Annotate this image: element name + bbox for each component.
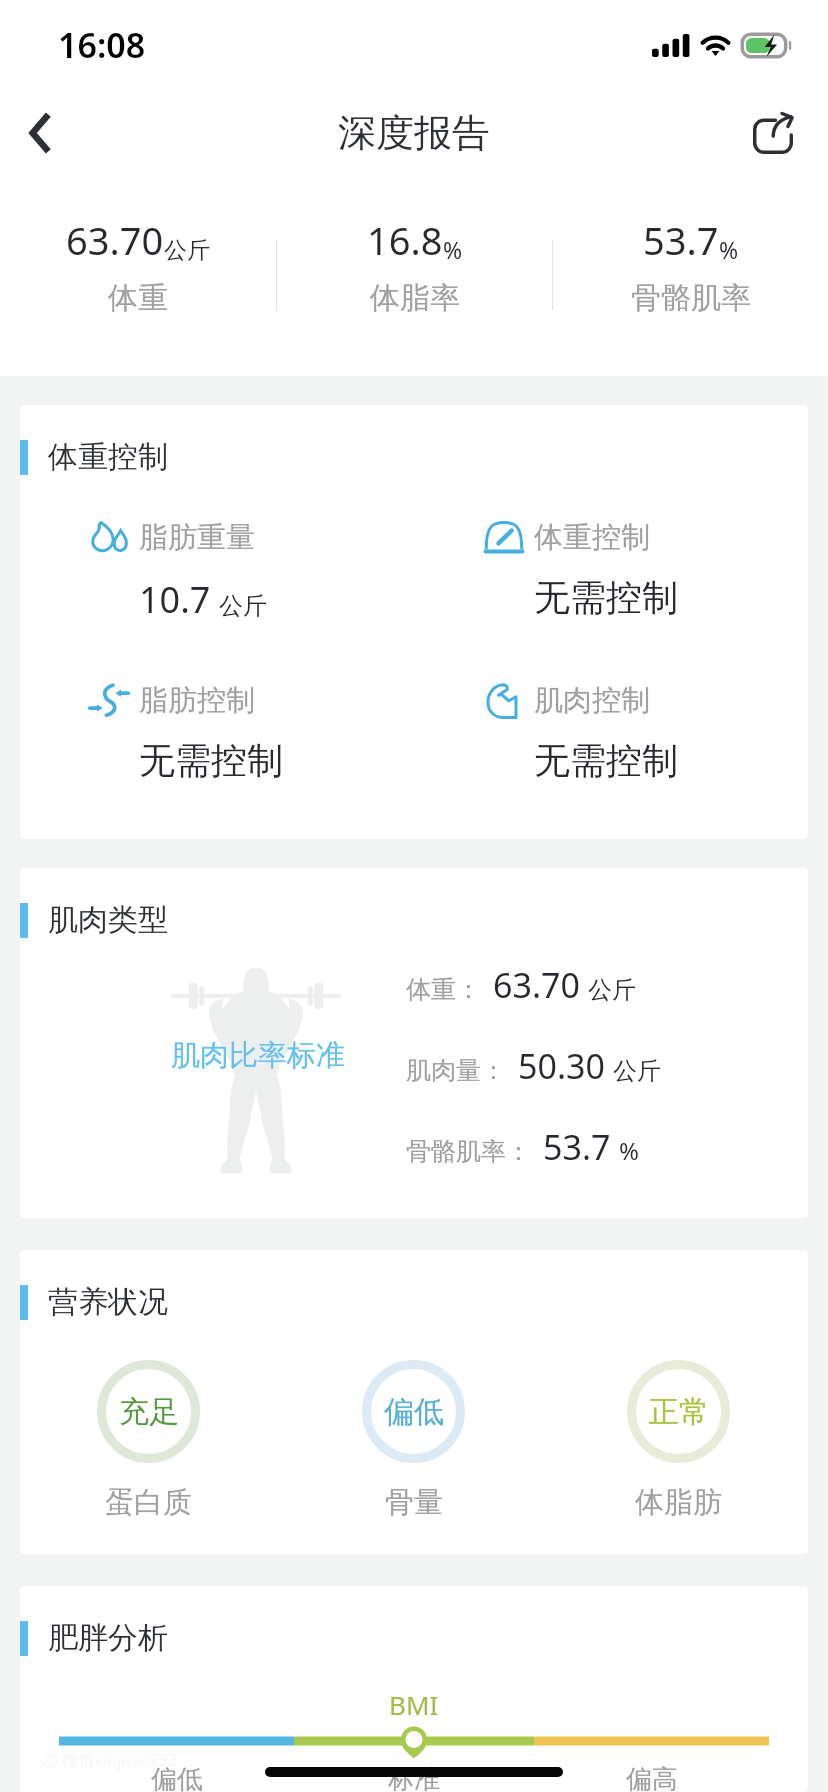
staticText: 偏高	[626, 1763, 678, 1792]
button[interactable]: 体重控制	[20, 405, 808, 839]
staticText: 肌肉量：	[406, 1055, 506, 1086]
staticText: 脂肪控制	[139, 682, 255, 719]
staticText: 63.70	[66, 214, 164, 266]
staticText: %	[719, 234, 739, 265]
staticText: 体重	[108, 279, 168, 317]
staticText: 肌肉类型	[48, 901, 168, 939]
staticText: 无需控制	[139, 738, 283, 783]
staticText: 公斤	[613, 1056, 661, 1086]
button[interactable]: 16.8	[277, 214, 552, 317]
staticText: 63.70	[493, 962, 580, 1008]
button[interactable]: 营养状况	[20, 1250, 808, 1554]
staticText: 53.7	[643, 214, 719, 266]
button[interactable]: 53.7	[553, 214, 828, 317]
staticText: 10.7	[139, 575, 211, 624]
staticText: 体脂率	[370, 279, 460, 317]
staticText: 50.30	[518, 1043, 605, 1089]
staticText: 公斤	[588, 975, 636, 1005]
staticText: 蛋白质	[105, 1484, 192, 1521]
staticText: %	[443, 234, 463, 265]
button[interactable]: 充足	[97, 1360, 200, 1521]
staticText: 53.7	[543, 1124, 611, 1170]
staticText: 体重控制	[534, 519, 650, 556]
staticText: 骨量	[385, 1484, 443, 1521]
staticText: 充足	[119, 1393, 179, 1431]
staticText: 偏低	[151, 1763, 203, 1792]
staticText: 无需控制	[534, 738, 678, 783]
staticText: %	[619, 1134, 639, 1167]
staticText: 公斤	[219, 591, 267, 621]
staticText: ⓒ 微博xinjuan233	[42, 1749, 177, 1771]
button[interactable]: 肌肉类型	[20, 868, 808, 1218]
button[interactable]: 偏低	[362, 1360, 465, 1521]
staticText: 肥胖分析	[48, 1619, 168, 1657]
staticText: 16:08	[58, 22, 146, 68]
staticText: 正常	[649, 1393, 709, 1431]
staticText: 无需控制	[534, 575, 678, 620]
staticText: 深度报告	[338, 109, 490, 157]
button[interactable]: 63.70	[0, 214, 276, 317]
button[interactable]: 体重控制	[484, 517, 808, 620]
button[interactable]: 脂肪控制	[89, 680, 414, 783]
button[interactable]: Share	[735, 95, 811, 171]
button[interactable]: Back	[1, 95, 77, 171]
button[interactable]: 肌肉控制	[484, 680, 808, 783]
staticText: 骨骼肌率	[631, 279, 751, 317]
staticText: 体重：	[406, 974, 481, 1005]
staticText: 肌肉控制	[534, 682, 650, 719]
button[interactable]: 正常	[627, 1360, 730, 1521]
staticText: 体重控制	[48, 438, 168, 476]
staticText: 偏低	[384, 1393, 444, 1431]
staticText: 标准	[388, 1763, 440, 1792]
staticText: 16.8	[367, 214, 443, 266]
staticText: 肌肉比率标准	[171, 1037, 345, 1074]
staticText: 公斤	[164, 236, 210, 265]
staticText: 骨骼肌率：	[406, 1136, 531, 1167]
staticText: BMI	[389, 1687, 439, 1722]
staticText: 营养状况	[48, 1283, 168, 1321]
button[interactable]: 脂肪重量	[89, 517, 414, 624]
staticText: 脂肪重量	[139, 519, 255, 556]
staticText: 体脂肪	[635, 1484, 722, 1521]
